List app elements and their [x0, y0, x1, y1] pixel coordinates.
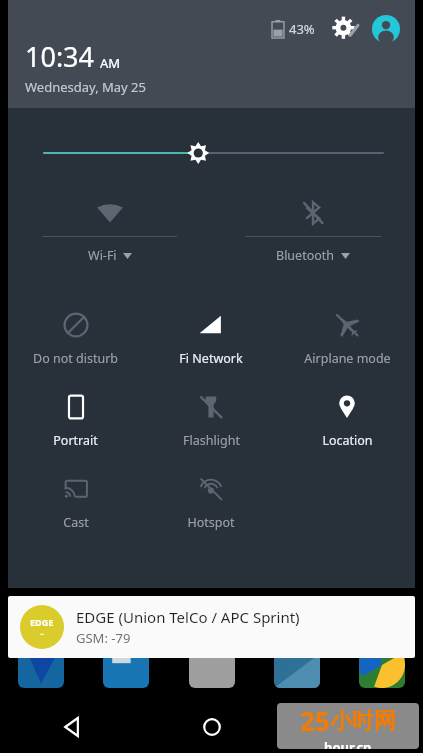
- staticText: Hotspot: [187, 514, 235, 531]
- staticText: Portrait: [53, 432, 98, 449]
- button[interactable]: 10:34: [25, 38, 146, 96]
- button[interactable]: Fi Network: [143, 298, 279, 380]
- button[interactable]: Cast: [8, 462, 143, 544]
- button[interactable]: Wi-Fi: [8, 196, 211, 272]
- button[interactable]: App: [18, 642, 64, 688]
- staticText: Do not disturb: [33, 350, 118, 367]
- staticText: hour.cn: [324, 738, 372, 749]
- staticText: 43%: [289, 20, 315, 38]
- button[interactable]: App: [103, 642, 149, 688]
- button[interactable]: Portrait: [8, 380, 143, 462]
- staticText: Location: [322, 432, 373, 449]
- staticText: 小时网: [330, 707, 396, 735]
- button[interactable]: App: [359, 642, 405, 688]
- staticText: Bluetooth: [276, 247, 335, 264]
- button[interactable]: Settings: [331, 14, 361, 44]
- staticText: Flashlight: [183, 432, 240, 449]
- button[interactable]: Back: [0, 701, 141, 753]
- button[interactable]: Flashlight: [143, 380, 279, 462]
- staticText: Wi-Fi: [88, 247, 117, 264]
- staticText: ..: [40, 628, 44, 638]
- button[interactable]: Brightness: [8, 138, 415, 168]
- button[interactable]: Airplane mode: [279, 298, 415, 380]
- button[interactable]: Location: [279, 380, 415, 462]
- staticText: Airplane mode: [304, 350, 391, 367]
- button[interactable]: App: [274, 642, 320, 688]
- button[interactable]: Hotspot: [143, 462, 279, 544]
- staticText: GSM: -79: [76, 629, 131, 647]
- staticText: Cast: [63, 514, 89, 531]
- staticText: AM: [100, 54, 121, 72]
- button[interactable]: EDGE: [8, 596, 415, 658]
- staticText: EDGE: [30, 616, 54, 628]
- button[interactable]: Recents: [282, 701, 423, 753]
- staticText: EDGE (Union TelCo / APC Sprint): [76, 607, 300, 627]
- button[interactable]: Home: [141, 701, 282, 753]
- button[interactable]: Do not disturb: [8, 298, 143, 380]
- button[interactable]: App: [189, 642, 235, 688]
- button[interactable]: Bluetooth: [211, 196, 415, 272]
- staticText: Fi Network: [179, 350, 243, 367]
- button[interactable]: User: [371, 14, 401, 44]
- staticText: 10:34: [25, 38, 95, 75]
- staticText: Wednesday, May 25: [25, 78, 146, 96]
- staticText: 25: [300, 703, 330, 738]
